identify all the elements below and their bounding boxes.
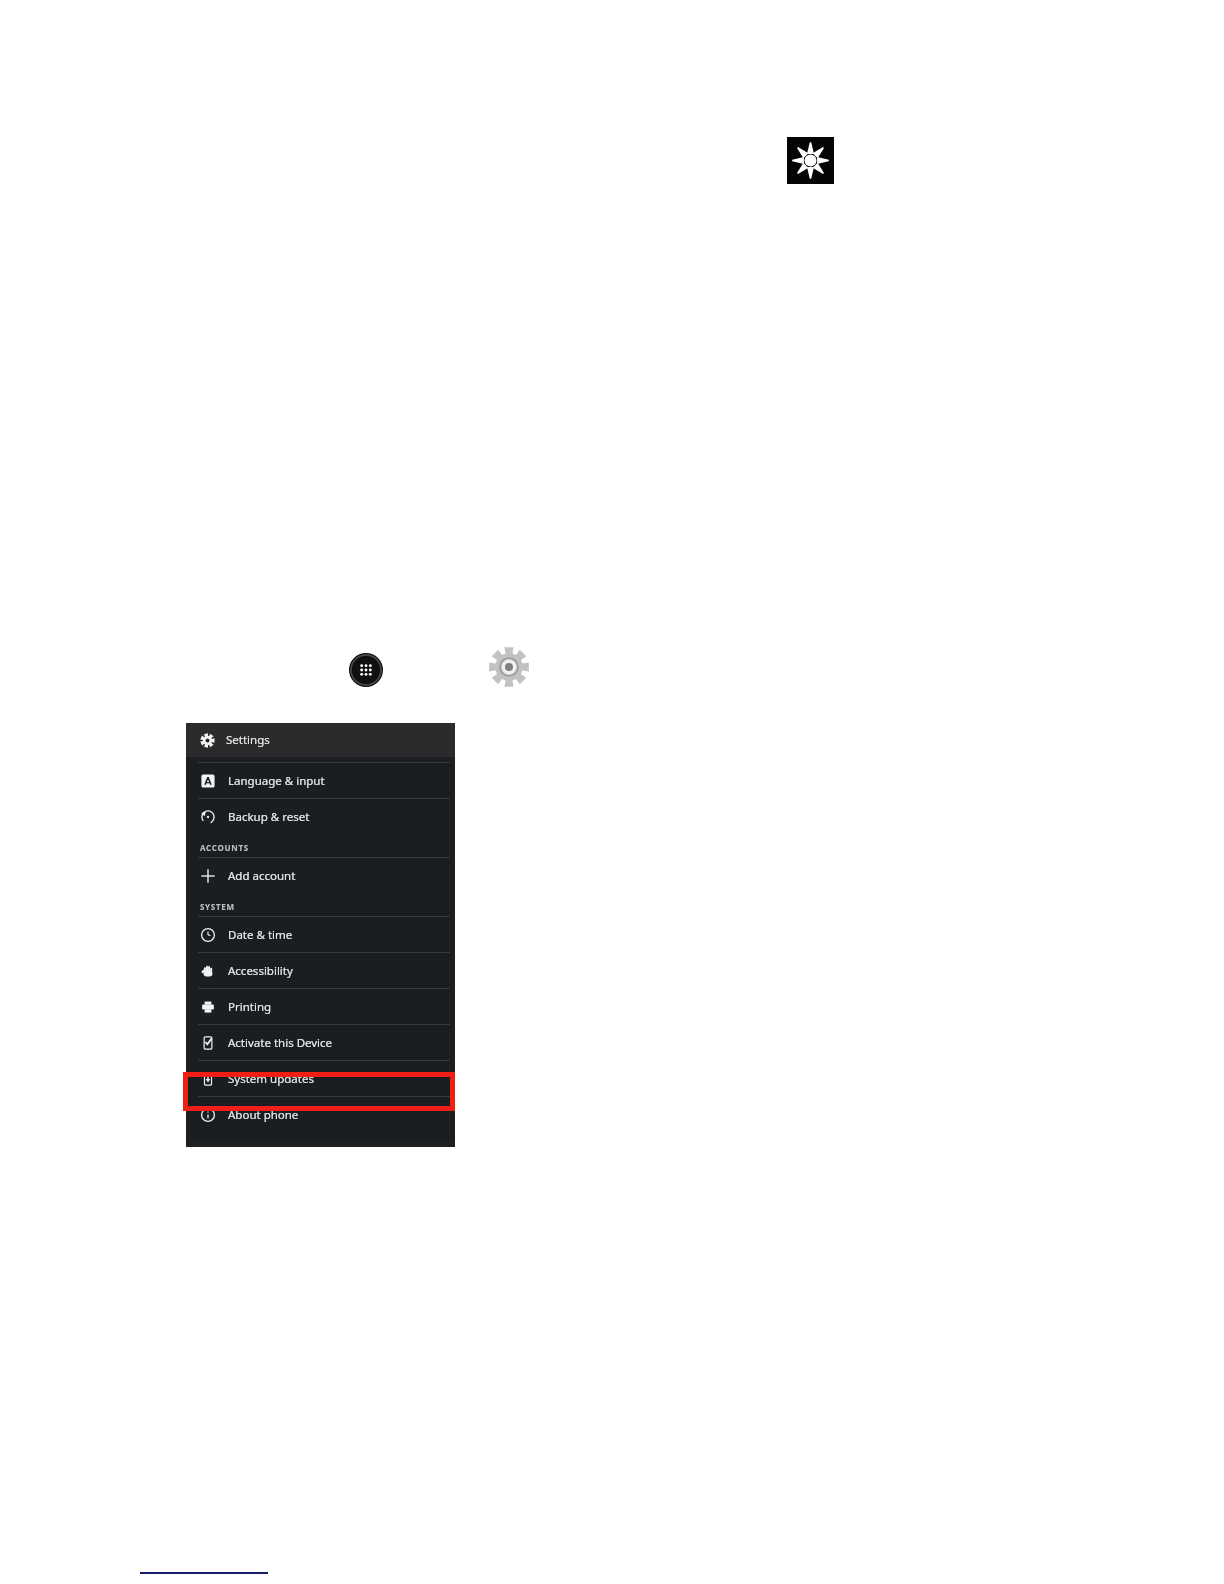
staticText: SYSTEM [200, 901, 235, 912]
staticText: ACCOUNTS [200, 842, 249, 853]
staticText: About phone [228, 1107, 299, 1123]
staticText: Accessibility [228, 963, 293, 979]
staticText: System updates [228, 1071, 314, 1087]
button[interactable]: System updates [186, 1061, 455, 1096]
staticText: Backup & reset [228, 809, 310, 825]
button[interactable]: Activate this Device [186, 1025, 455, 1060]
staticText: Date & time [228, 927, 293, 943]
button[interactable]: Date & time [186, 917, 455, 952]
staticText: Add account [228, 868, 296, 884]
staticText: Settings [226, 732, 270, 748]
button[interactable]: About phone [186, 1097, 455, 1132]
staticText: Printing [228, 999, 272, 1015]
button[interactable]: Settings [186, 723, 455, 757]
button[interactable]: Add account [186, 858, 455, 893]
button[interactable]: Language & input [186, 763, 455, 798]
button[interactable]: All apps [349, 653, 383, 687]
button[interactable]: Accessibility [186, 953, 455, 988]
staticText: Language & input [228, 773, 325, 789]
other: Settings app icon [787, 137, 834, 184]
staticText: Activate this Device [228, 1035, 333, 1051]
button[interactable]: Backup & reset [186, 799, 455, 834]
button[interactable]: Settings [488, 646, 530, 688]
button[interactable]: Printing [186, 989, 455, 1024]
other: System updates highlighted [183, 1072, 455, 1111]
